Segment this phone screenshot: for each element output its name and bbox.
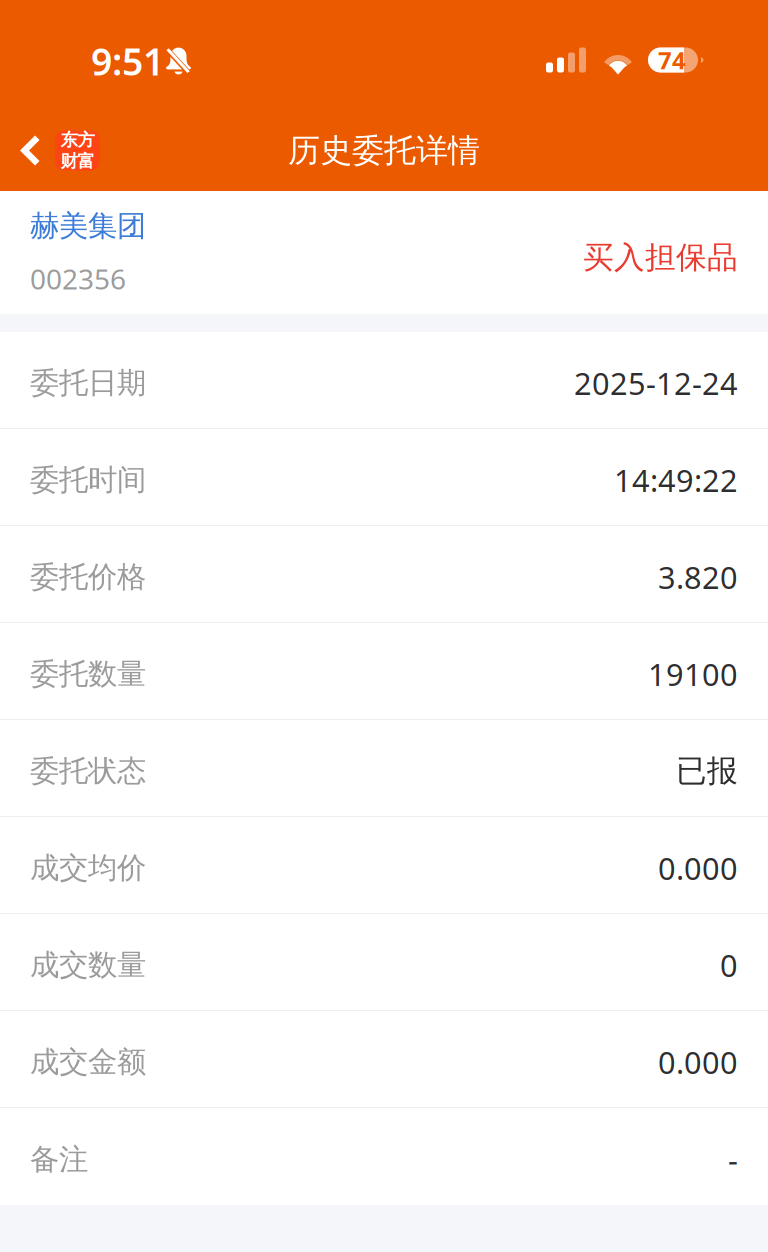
staticText: 财富	[60, 150, 94, 172]
staticText: 赫美集团	[30, 208, 146, 244]
staticText: 已报	[676, 752, 738, 790]
button[interactable]: 赫美集团	[30, 208, 146, 244]
staticText: 0.000	[658, 1042, 738, 1082]
staticText: 0.000	[658, 848, 738, 888]
staticText: 2025-12-24	[574, 363, 738, 403]
staticText: 14:49:22	[614, 460, 738, 500]
staticText: 74	[658, 44, 686, 76]
staticText: 3.820	[658, 557, 738, 597]
staticText: 备注	[30, 1141, 88, 1177]
staticText: 9:51	[91, 36, 164, 86]
staticText: 002356	[30, 260, 126, 297]
staticText: 委托数量	[30, 656, 146, 692]
staticText: 委托日期	[30, 365, 146, 401]
staticText: 成交数量	[30, 947, 146, 983]
staticText: 东方	[60, 129, 94, 150]
staticText: 0	[720, 945, 738, 985]
staticText: 委托价格	[30, 559, 146, 595]
staticText: 19100	[648, 654, 738, 694]
staticText: 委托时间	[30, 462, 146, 498]
staticText: 历史委托详情	[288, 131, 480, 170]
staticText: -	[728, 1139, 738, 1180]
staticText: 成交均价	[30, 850, 146, 886]
staticText: 买入担保品	[583, 239, 738, 276]
button[interactable]: Back to East Money	[0, 124, 100, 176]
staticText: 委托状态	[30, 753, 146, 789]
staticText: 成交金额	[30, 1044, 146, 1080]
